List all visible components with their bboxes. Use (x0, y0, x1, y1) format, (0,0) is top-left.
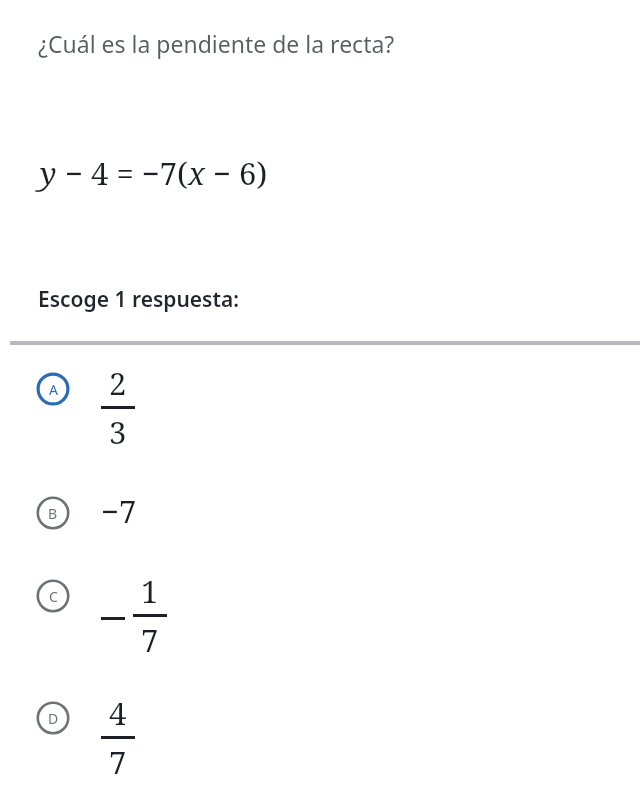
staticText: B (48, 504, 58, 523)
staticText: Escoge 1 respuesta: (38, 285, 240, 314)
staticText: D (48, 709, 59, 728)
staticText: − 6) (205, 152, 268, 194)
staticText: A (49, 380, 58, 399)
staticText: 7 (141, 619, 159, 661)
button[interactable]: A (0, 360, 640, 468)
staticText: ¿Cuál es la pendiente de la recta? (38, 28, 395, 59)
button[interactable]: C (0, 568, 640, 680)
button[interactable]: D (0, 690, 640, 807)
staticText: 4 (109, 692, 127, 734)
staticText: 1 (141, 570, 159, 612)
staticText: 2 (109, 362, 127, 404)
staticText: 7 (109, 741, 127, 783)
staticText: −7 (101, 490, 137, 532)
staticText: y (40, 152, 57, 194)
button[interactable]: B (0, 488, 640, 548)
staticText: 3 (109, 411, 127, 453)
staticText: x (188, 152, 205, 194)
staticText: C (49, 587, 58, 606)
staticText: − 4 = −7( (57, 152, 188, 194)
